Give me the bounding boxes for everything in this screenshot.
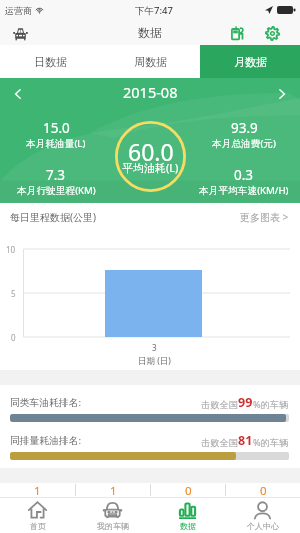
staticText: 我的车辆	[97, 521, 129, 531]
staticText: %的车辆	[253, 398, 289, 411]
staticText: 每日里程数据(公里)	[10, 210, 96, 224]
staticText: 同类车油耗排名:	[10, 396, 82, 409]
staticText: 本月总油费(元)	[212, 137, 276, 150]
staticText: 击败全国	[201, 399, 238, 411]
staticText: 7.3	[46, 166, 66, 184]
staticText: 本月耗油量(L)	[26, 137, 86, 150]
button[interactable]: 月数据	[200, 45, 300, 78]
staticText: 首页	[30, 521, 46, 531]
button[interactable]: 我的车辆	[75, 498, 150, 533]
staticText: 个人中心	[247, 521, 279, 531]
staticText: 下午7:47	[135, 4, 173, 17]
button[interactable]: My car	[9, 22, 31, 44]
staticText: 平均油耗(L)	[122, 160, 179, 175]
staticText: 0	[260, 483, 267, 497]
staticText: 0.3	[234, 166, 254, 184]
button[interactable]: Settings	[262, 23, 282, 43]
staticText: 日数据	[34, 55, 67, 69]
staticText: 0	[185, 483, 192, 497]
staticText: 99	[238, 394, 253, 411]
button[interactable]: Next month	[272, 84, 292, 104]
staticText: 3	[152, 342, 157, 353]
staticText: 5	[11, 288, 16, 299]
staticText: 本月行驶里程(KM)	[17, 184, 96, 197]
staticText: 2015-08	[123, 82, 178, 102]
button[interactable]: 个人中心	[225, 498, 300, 533]
staticText: 击败全国	[201, 437, 238, 449]
staticText: 1	[110, 483, 117, 497]
button[interactable]: 更多图表 >	[240, 210, 289, 224]
staticText: 15.0	[43, 119, 70, 137]
staticText: 更多图表 >	[240, 210, 289, 224]
staticText: 1	[34, 483, 41, 497]
staticText: 同排量耗油排名:	[10, 434, 82, 447]
staticText: 93.9	[231, 119, 258, 137]
button[interactable]: 数据	[150, 498, 225, 533]
staticText: 本月平均车速(KM/H)	[199, 184, 289, 197]
staticText: %的车辆	[253, 436, 289, 449]
button[interactable]: 1	[76, 483, 150, 497]
staticText: 10	[6, 244, 16, 255]
staticText: 60.0	[128, 136, 174, 167]
button[interactable]: 0	[151, 483, 225, 497]
staticText: 运营商	[5, 5, 32, 16]
staticText: 81	[238, 432, 253, 449]
staticText: 0	[11, 332, 16, 343]
staticText: 月数据	[234, 55, 267, 69]
staticText: 周数据	[134, 55, 167, 69]
staticText: 数据	[180, 521, 196, 531]
staticText: 日期 (日)	[138, 355, 171, 367]
button[interactable]: 1	[0, 483, 75, 497]
button[interactable]: 周数据	[100, 45, 200, 78]
button[interactable]: Previous month	[8, 84, 28, 104]
button[interactable]: Refuel	[228, 23, 248, 43]
button[interactable]: 0	[226, 483, 300, 497]
button[interactable]: 首页	[0, 498, 75, 533]
button[interactable]: 日数据	[0, 45, 100, 78]
staticText: 数据	[138, 25, 162, 40]
